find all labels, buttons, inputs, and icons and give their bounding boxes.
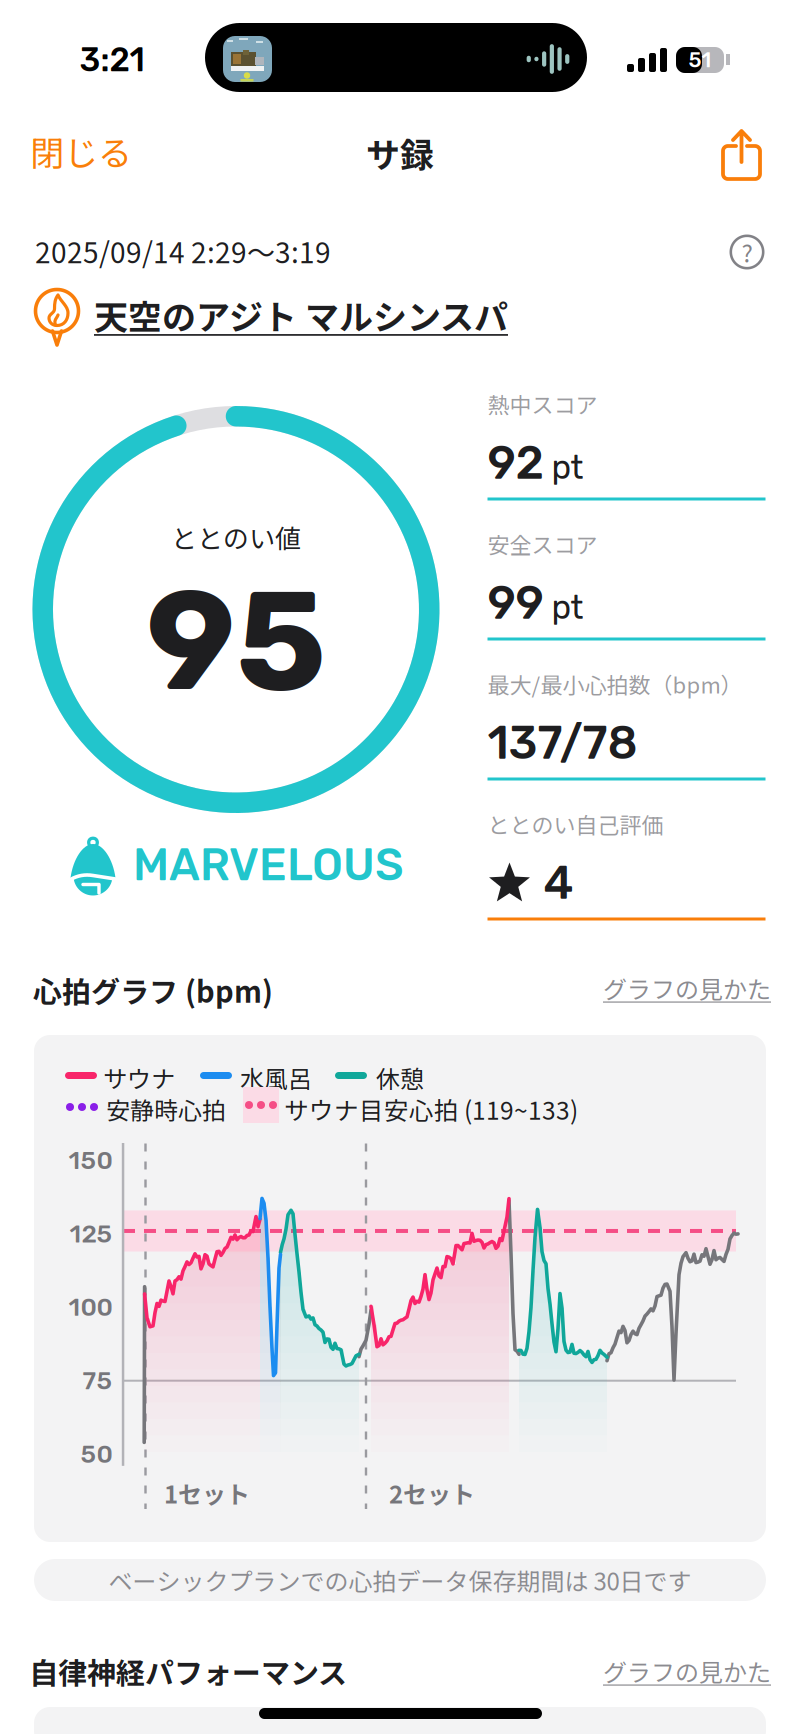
button[interactable]: 閉じる [0, 0, 800, 1734]
staticText: 自律神経パフォーマンス [29, 1650, 347, 1692]
staticText: 92 [487, 436, 543, 490]
staticText: 天空のアジト マルシンスパ [94, 290, 508, 340]
staticText: pt [543, 448, 583, 487]
staticText: 99 [487, 576, 543, 630]
staticText: 心拍グラフ (bpm) [33, 969, 273, 1011]
staticText: サ録 [366, 128, 434, 178]
staticText: MARVELOUS [133, 839, 404, 891]
staticText: ? [741, 235, 752, 269]
button[interactable]: グラフの見かた [0, 0, 800, 1734]
staticText: 4 [543, 856, 573, 910]
staticText: 51 [688, 48, 711, 72]
staticText: グラフの見かた [603, 1654, 771, 1688]
staticText: 100 [68, 1292, 112, 1322]
button[interactable]: Help [0, 0, 800, 1734]
staticText: 水風呂 [240, 1060, 312, 1095]
button[interactable]: Share [0, 0, 800, 1734]
button[interactable]: グラフの見かた [0, 0, 800, 1734]
staticText: pt [543, 588, 583, 627]
staticText: 3:21 [79, 40, 144, 79]
staticText: 閉じる [30, 126, 132, 176]
staticText: サウナ目安心拍 (119~133) [284, 1091, 578, 1127]
button[interactable]: 天空のアジト マルシンスパ [0, 0, 800, 1734]
staticText: 2025/09/14 2:29〜3:19 [35, 231, 331, 271]
staticText: サウナ [103, 1060, 175, 1095]
staticText: 安全スコア [487, 528, 597, 560]
staticText: 1セット [164, 1476, 250, 1510]
staticText: グラフの見かた [603, 971, 771, 1005]
staticText: 125 [69, 1219, 112, 1249]
staticText: ととのい自己評価 [487, 808, 663, 840]
staticText: 95 [146, 558, 326, 724]
staticText: ととのい値 [171, 518, 301, 556]
staticText: 137/78 [487, 716, 637, 770]
staticText: 150 [68, 1146, 112, 1175]
staticText: 2セット [389, 1476, 475, 1510]
staticText: 最大/最小心拍数（bpm） [487, 668, 742, 700]
staticText: 50 [80, 1439, 112, 1469]
staticText: ベーシックプランでの心拍データ保存期間は 30日です [108, 1563, 691, 1597]
staticText: 安静時心拍 [106, 1092, 226, 1126]
staticText: 休憩 [376, 1060, 424, 1095]
staticText: 75 [82, 1366, 112, 1395]
staticText: 熱中スコア [487, 388, 597, 420]
